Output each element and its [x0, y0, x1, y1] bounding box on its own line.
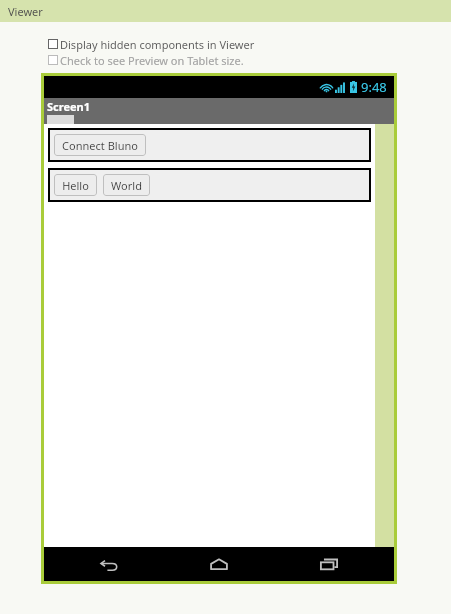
- button[interactable]: Display hidden components in Viewer: [48, 36, 255, 52]
- button[interactable]: Recents: [274, 547, 384, 581]
- button[interactable]: Home: [164, 547, 274, 581]
- button[interactable]: Back: [54, 547, 164, 581]
- staticText: Check to see Preview on Tablet size.: [60, 53, 244, 68]
- staticText: World: [111, 178, 142, 193]
- staticText: Viewer: [8, 4, 43, 19]
- staticText: Screen1: [47, 99, 91, 114]
- staticText: Hello: [62, 178, 89, 193]
- button[interactable]: Hello: [54, 174, 97, 196]
- staticText: 9:48: [361, 78, 387, 96]
- button[interactable]: Connect Bluno: [54, 134, 146, 156]
- staticText: Display hidden components in Viewer: [60, 37, 255, 52]
- button[interactable]: Check to see Preview on Tablet size.: [48, 52, 244, 68]
- staticText: Connect Bluno: [62, 138, 138, 153]
- button[interactable]: World: [103, 174, 150, 196]
